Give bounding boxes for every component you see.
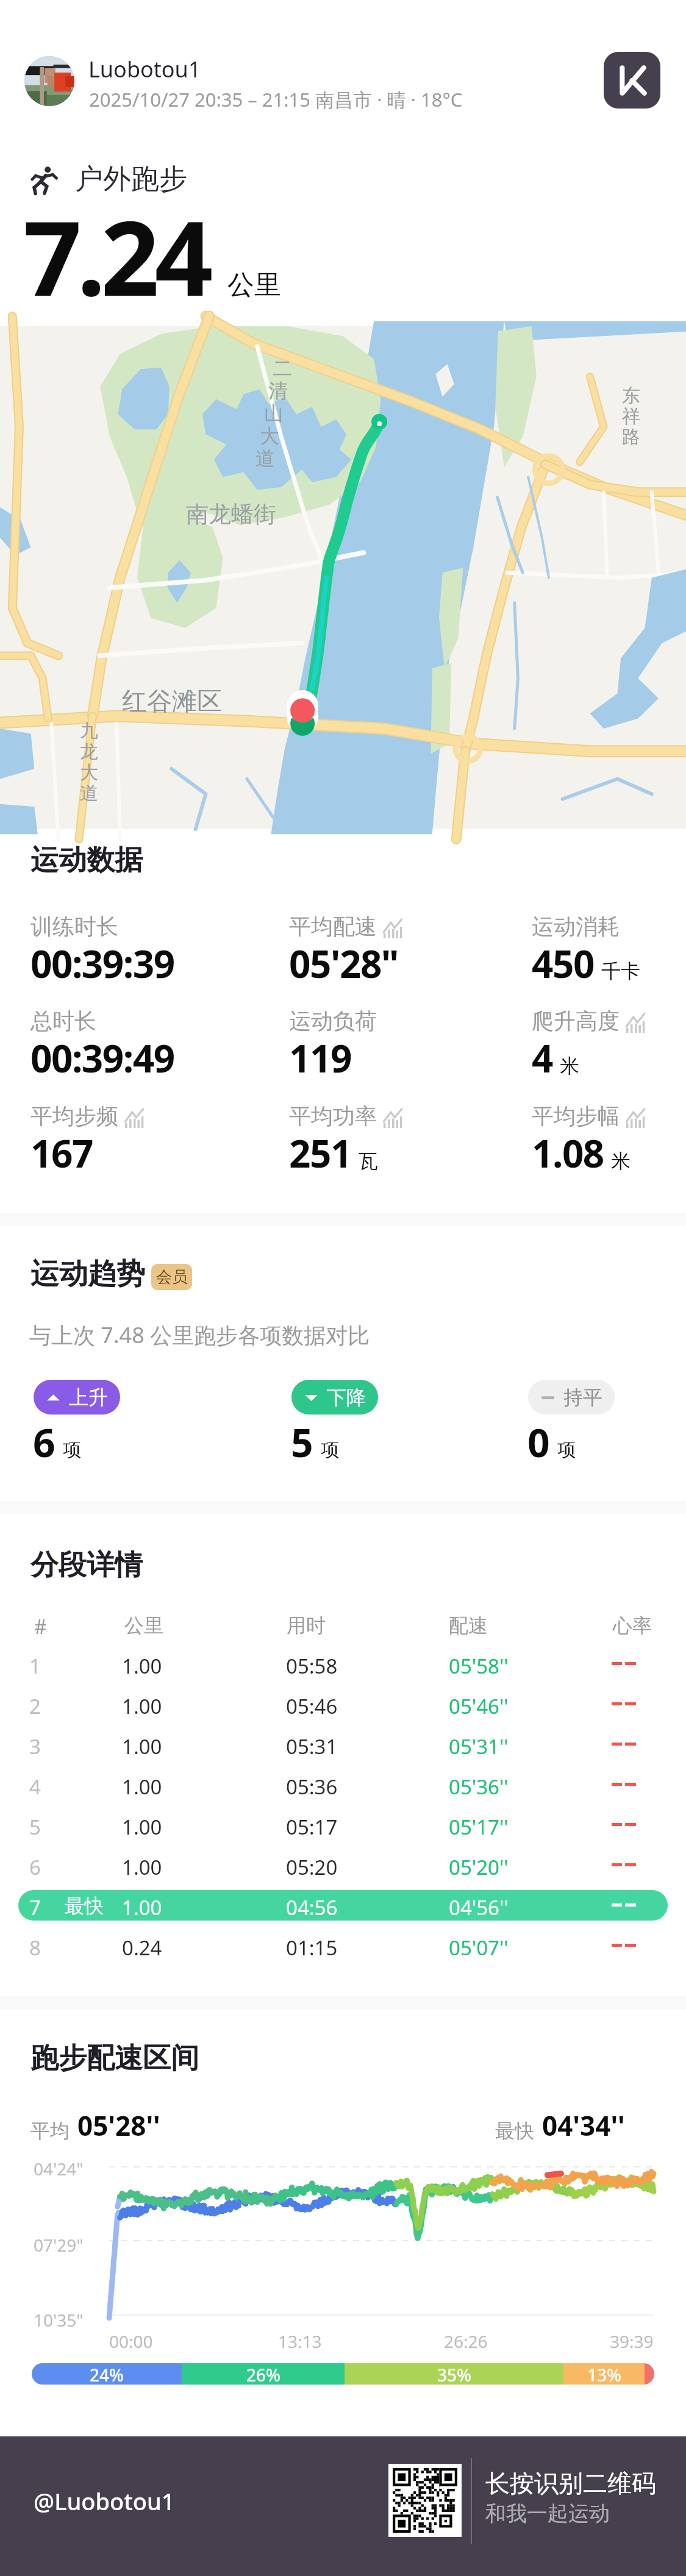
staticText: 01:15: [286, 1934, 338, 1961]
staticText: 项: [321, 1438, 339, 1461]
staticText: 05'58'': [449, 1652, 509, 1680]
button[interactable]: 5: [18, 1810, 668, 1840]
staticText: 167: [30, 1127, 93, 1179]
staticText: 运动负荷: [289, 1007, 377, 1035]
staticText: 会员: [156, 1267, 188, 1287]
staticText: 红谷滩区: [122, 686, 222, 718]
staticText: 05'17'': [449, 1813, 509, 1841]
button[interactable]: 8: [18, 1930, 668, 1961]
staticText: 清: [268, 379, 288, 403]
staticText: 跑步配速区间: [30, 2041, 199, 2076]
staticText: 下降: [327, 1385, 366, 1410]
staticText: 总时长: [30, 1007, 96, 1035]
staticText: 东: [622, 384, 640, 407]
staticText: 2025/10/27 20:35 – 21:15 南昌市 · 晴 · 18°C: [89, 87, 463, 112]
staticText: 公里: [124, 1613, 163, 1638]
staticText: 05:17: [286, 1813, 338, 1841]
staticText: 和我一起运动: [485, 2500, 610, 2527]
staticText: 00:39:49: [30, 1032, 174, 1083]
staticText: 26:26: [444, 2330, 488, 2353]
staticText: 07'29": [34, 2233, 84, 2257]
staticText: 6: [29, 1854, 41, 1881]
staticText: 山: [264, 401, 284, 426]
staticText: 配速: [449, 1613, 488, 1638]
button[interactable]: Keep: [604, 52, 660, 109]
staticText: 平均步频: [30, 1102, 118, 1130]
staticText: 九: [80, 719, 98, 743]
staticText: 1.00: [122, 1894, 162, 1921]
button[interactable]: 上升: [34, 1380, 120, 1415]
staticText: 05:20: [286, 1854, 338, 1881]
staticText: 二: [273, 356, 292, 380]
staticText: 大: [80, 761, 98, 784]
staticText: 1.00: [122, 1813, 162, 1841]
staticText: 13%: [587, 2363, 621, 2385]
staticText: 道: [80, 782, 98, 805]
staticText: 6: [33, 1416, 55, 1469]
staticText: 道: [255, 446, 275, 471]
staticText: 05'07'': [449, 1934, 509, 1961]
button[interactable]: 二: [0, 326, 686, 829]
staticText: 与上次 7.48 公里跑步各项数据对比: [29, 1320, 370, 1350]
staticText: 05:31: [286, 1733, 338, 1760]
staticText: 平均配速: [289, 913, 377, 940]
staticText: 26%: [246, 2363, 280, 2385]
staticText: 00:00: [109, 2330, 153, 2353]
staticText: 1.00: [122, 1652, 162, 1680]
staticText: 心率: [613, 1613, 652, 1638]
staticText: 05'20'': [449, 1854, 509, 1881]
staticText: 04'56'': [449, 1894, 509, 1921]
button[interactable]: 24%: [32, 2363, 654, 2385]
button[interactable]: 下降: [291, 1380, 378, 1415]
staticText: 04'34'': [542, 2107, 625, 2144]
staticText: 最快: [65, 1894, 104, 1918]
button[interactable]: 7: [18, 1890, 668, 1921]
staticText: 平均步幅: [532, 1102, 620, 1130]
staticText: 7: [29, 1894, 41, 1921]
staticText: 10'35": [34, 2308, 84, 2332]
staticText: 05:58: [286, 1652, 338, 1680]
staticText: 7.24: [23, 186, 209, 326]
staticText: 05'28'': [77, 2107, 160, 2144]
staticText: @Luobotou1: [34, 2485, 175, 2517]
staticText: 119: [289, 1032, 351, 1083]
button[interactable]: 6: [18, 1850, 668, 1880]
staticText: 0: [527, 1416, 550, 1469]
staticText: 南龙蟠街: [186, 500, 276, 529]
staticText: 13:13: [278, 2330, 322, 2353]
staticText: 05'31'': [449, 1733, 509, 1760]
staticText: 251: [289, 1127, 351, 1179]
staticText: 平均: [30, 2119, 70, 2143]
staticText: 35%: [437, 2363, 471, 2385]
staticText: 米: [560, 1054, 579, 1078]
staticText: 2: [29, 1693, 41, 1720]
staticText: 祥: [622, 405, 640, 428]
staticText: 04'24": [34, 2157, 84, 2180]
staticText: 4: [532, 1032, 552, 1083]
staticText: 3: [29, 1733, 41, 1760]
staticText: 1.08: [532, 1127, 604, 1179]
staticText: 5: [291, 1416, 313, 1469]
staticText: 户外跑步: [75, 162, 187, 197]
staticText: 05:46: [286, 1693, 338, 1720]
staticText: 04:56: [286, 1894, 338, 1921]
staticText: 39:39: [610, 2330, 654, 2353]
button[interactable]: 持平: [528, 1380, 615, 1415]
staticText: 00:39:39: [30, 938, 174, 989]
staticText: 05'28": [289, 938, 399, 989]
staticText: 持平: [563, 1385, 602, 1410]
staticText: 1.00: [122, 1693, 162, 1720]
staticText: 1.00: [122, 1854, 162, 1881]
staticText: 分段详情: [30, 1547, 143, 1583]
staticText: 1: [29, 1652, 41, 1680]
staticText: 24%: [90, 2363, 124, 2385]
button[interactable]: 1: [18, 1649, 668, 1679]
staticText: 上升: [69, 1385, 108, 1410]
button[interactable]: 2: [18, 1689, 668, 1719]
button[interactable]: 3: [18, 1729, 668, 1760]
staticText: 1.00: [122, 1773, 162, 1800]
staticText: 项: [557, 1438, 576, 1461]
staticText: 05:36: [286, 1773, 338, 1800]
button[interactable]: 4: [18, 1769, 668, 1800]
staticText: 公里: [227, 268, 281, 302]
